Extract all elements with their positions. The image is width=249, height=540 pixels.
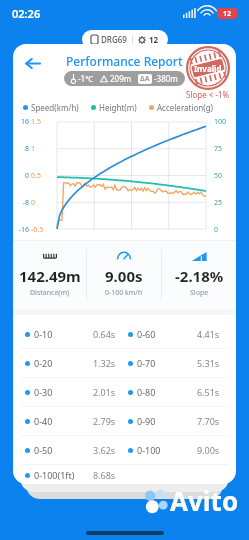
staticText: 16	[15, 117, 29, 127]
staticText: 0	[15, 171, 29, 181]
staticText: 02:26	[12, 6, 41, 21]
button[interactable]: 0-30	[21, 378, 228, 406]
staticText: 100	[214, 117, 232, 127]
staticText: 0	[214, 225, 232, 235]
staticText: -2.18%	[175, 266, 224, 286]
staticText: 0-50	[34, 444, 53, 456]
staticText: 0-60	[137, 328, 156, 340]
staticText: 50	[214, 171, 232, 181]
staticText: 0	[31, 198, 49, 208]
staticText: 2.01s	[93, 386, 116, 398]
staticText: 8.68s	[93, 469, 116, 481]
staticText: 1.5	[31, 117, 49, 127]
staticText: 0.64s	[93, 328, 116, 340]
button[interactable]: DRG69	[82, 30, 168, 49]
staticText: 25	[214, 198, 232, 208]
staticText: 8	[15, 144, 29, 154]
staticText: -8	[15, 198, 29, 208]
staticText: ΔA	[140, 74, 150, 84]
button[interactable]: 142.49m	[13, 241, 86, 309]
button[interactable]: 0-50	[21, 436, 228, 464]
staticText: Height(m)	[99, 102, 137, 113]
staticText: -380m	[154, 73, 178, 84]
staticText: 0-90	[137, 415, 156, 427]
button[interactable]: 0-40	[21, 407, 228, 435]
staticText: 75	[214, 144, 232, 154]
staticText: 0-100	[137, 444, 161, 456]
staticText: 0.5	[31, 171, 49, 181]
staticText: Speed(km/h)	[31, 102, 79, 113]
staticText: 209m	[110, 73, 132, 84]
staticText: 2.79s	[93, 415, 116, 427]
staticText: 3.62s	[93, 444, 116, 456]
staticText: 9.00s	[197, 444, 220, 456]
staticText: 1.32s	[93, 357, 116, 369]
button[interactable]: 9.00s	[87, 241, 161, 309]
staticText: 9.00s	[105, 266, 143, 286]
staticText: 0-10	[34, 328, 53, 340]
staticText: 142.49m	[19, 266, 81, 286]
staticText: Distance(m)	[30, 288, 70, 298]
button[interactable]: 0-100(1ft)	[21, 465, 228, 484]
staticText: 0-70	[137, 357, 156, 369]
staticText: -1℃	[78, 73, 94, 84]
staticText: -16	[15, 225, 29, 235]
staticText: 0-100 km/h	[105, 288, 143, 298]
button[interactable]: -2.18%	[162, 241, 236, 309]
staticText: Acceleration(g)	[157, 102, 213, 113]
staticText: 0-20	[34, 357, 53, 369]
staticText: 5.31s	[197, 357, 220, 369]
staticText: 7.70s	[197, 415, 220, 427]
button[interactable]: 0-20	[21, 349, 228, 377]
button[interactable]: -1℃	[64, 71, 185, 86]
staticText: 0-80	[137, 386, 156, 398]
staticText: Avito	[170, 483, 239, 518]
staticText: Slope < -1%	[186, 89, 230, 100]
staticText: 12	[223, 9, 232, 19]
staticText: 6.51s	[197, 386, 220, 398]
staticText: Performance Report	[66, 53, 183, 69]
staticText: 0-40	[34, 415, 53, 427]
button[interactable]: Back	[19, 50, 45, 76]
staticText: -0.5	[31, 225, 49, 235]
staticText: 4.41s	[197, 328, 220, 340]
staticText: DRG69	[101, 34, 127, 45]
staticText: 1	[31, 144, 49, 154]
staticText: 12	[149, 34, 159, 45]
staticText: Slope	[190, 288, 209, 298]
staticText: Invalid	[194, 63, 222, 74]
button[interactable]: 0-10	[21, 320, 228, 348]
staticText: 0-100(1ft)	[34, 469, 75, 481]
staticText: 0-30	[34, 386, 53, 398]
